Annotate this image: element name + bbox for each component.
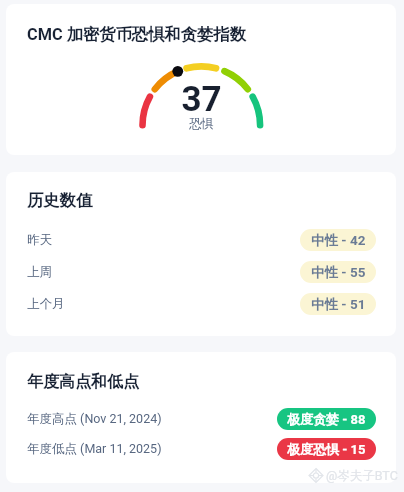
staticText: 恐惧: [189, 116, 214, 132]
staticText: 中性 - 51: [311, 296, 366, 313]
staticText: @岑夫子BTC: [326, 468, 398, 484]
button[interactable]: 昨天: [6, 229, 396, 251]
staticText: CMC 加密货币恐惧和贪婪指数: [27, 24, 246, 45]
button[interactable]: 年度低点 (Mar 11, 2025): [6, 438, 396, 460]
staticText: 历史数值: [27, 190, 93, 211]
staticText: 上个月: [27, 296, 65, 312]
staticText: 极度恐惧 - 15: [287, 441, 366, 457]
staticText: 年度高点和低点: [27, 372, 139, 392]
button[interactable]: 上个月: [6, 293, 396, 315]
staticText: 中性 - 55: [311, 264, 366, 281]
button[interactable]: 上周: [6, 261, 396, 283]
staticText: 极度贪婪 - 88: [287, 411, 366, 427]
staticText: 上周: [27, 264, 52, 280]
staticText: 37: [181, 79, 222, 120]
staticText: 年度低点 (Mar 11, 2025): [27, 441, 162, 457]
staticText: 年度高点 (Nov 21, 2024): [27, 411, 162, 427]
other: Watermark: [309, 467, 404, 484]
staticText: 中性 - 42: [311, 232, 366, 249]
button[interactable]: 年度高点 (Nov 21, 2024): [6, 408, 396, 430]
staticText: 昨天: [27, 232, 52, 248]
